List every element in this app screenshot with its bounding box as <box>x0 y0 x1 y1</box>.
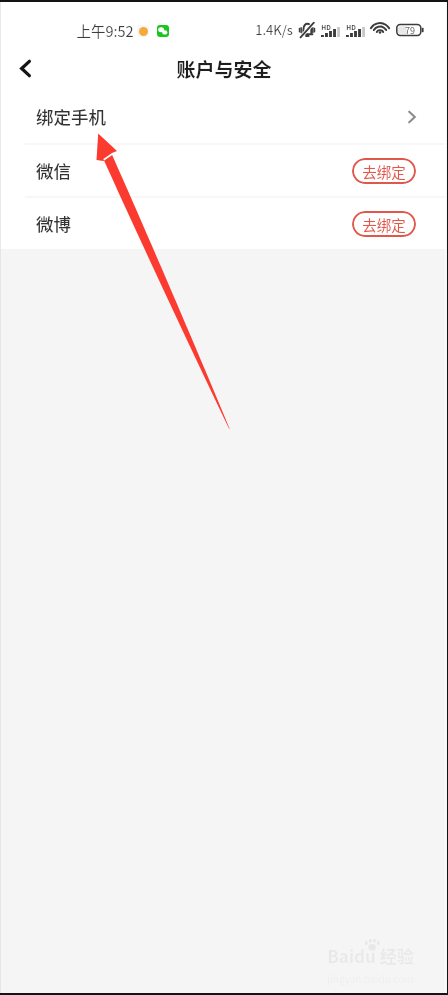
staticText: 去绑定 <box>362 214 406 235</box>
button[interactable]: 去绑定 <box>352 158 416 184</box>
button[interactable]: 绑定手机 <box>0 90 448 143</box>
staticText: HD <box>321 22 331 31</box>
button[interactable]: 去绑定 <box>352 211 416 237</box>
staticText: 微博 <box>36 211 71 236</box>
staticText: Baidu 经验 <box>327 943 414 968</box>
staticText: 绑定手机 <box>36 104 106 129</box>
staticText: 上午9:52 <box>76 20 134 41</box>
staticText: 账户与安全 <box>176 55 272 83</box>
staticText: 1.4K/s <box>255 20 293 39</box>
staticText: HD <box>346 22 356 31</box>
button[interactable]: Back <box>0 46 50 90</box>
staticText: 微信 <box>36 158 71 183</box>
staticText: 79 <box>405 24 415 37</box>
staticText: 去绑定 <box>362 161 406 182</box>
